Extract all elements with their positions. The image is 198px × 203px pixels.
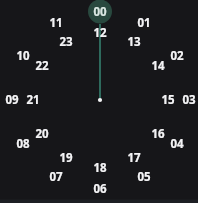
staticText: 07 [49, 169, 63, 185]
staticText: 18 [93, 160, 107, 176]
staticText: 08 [16, 136, 30, 152]
staticText: 23 [59, 34, 73, 50]
staticText: 06 [93, 181, 107, 197]
staticText: 10 [16, 48, 30, 64]
staticText: 19 [59, 150, 73, 166]
staticText: 12 [93, 25, 107, 41]
button[interactable]: 24 hour analog watch face showing 00 hou… [0, 0, 198, 203]
staticText: 09 [5, 92, 19, 108]
staticText: 11 [49, 15, 63, 31]
staticText: 21 [26, 92, 40, 108]
staticText: 03 [182, 92, 196, 108]
staticText: 02 [170, 48, 184, 64]
staticText: 20 [35, 126, 49, 142]
staticText: 04 [170, 136, 184, 152]
staticText: 17 [127, 150, 141, 166]
staticText: 00 [93, 4, 107, 20]
staticText: 16 [151, 126, 165, 142]
staticText: 15 [161, 92, 175, 108]
staticText: 22 [35, 58, 49, 74]
staticText: 14 [151, 58, 165, 74]
staticText: 13 [127, 34, 141, 50]
staticText: 05 [137, 169, 151, 185]
staticText: 01 [137, 15, 151, 31]
